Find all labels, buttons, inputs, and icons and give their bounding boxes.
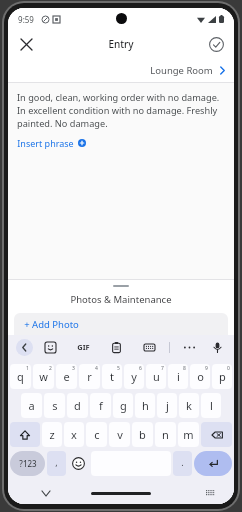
staticText: 1: [26, 365, 29, 372]
button[interactable]: GIF: [75, 340, 92, 354]
button[interactable]: g: [113, 393, 133, 418]
button[interactable]: p: [212, 364, 232, 389]
staticText: 6: [139, 365, 142, 372]
button[interactable]: + Add Photo: [14, 313, 228, 335]
button[interactable]: ,: [47, 451, 66, 476]
button[interactable]: More options: [181, 339, 197, 355]
staticText: k: [186, 398, 192, 413]
staticText: Lounge Room: [150, 64, 213, 77]
button[interactable]: Keyboard settings: [141, 339, 158, 356]
button[interactable]: Backspace: [201, 422, 232, 447]
button[interactable]: s: [44, 393, 65, 418]
button[interactable]: Shift: [10, 422, 40, 447]
staticText: y: [131, 369, 137, 384]
staticText: v: [117, 427, 123, 442]
staticText: 4: [95, 365, 98, 372]
staticText: ?123: [19, 458, 37, 469]
button[interactable]: Done: [204, 32, 228, 56]
staticText: e: [63, 369, 70, 384]
button[interactable]: w: [33, 364, 54, 389]
staticText: c: [94, 427, 100, 442]
button[interactable]: t: [102, 364, 122, 389]
staticText: n: [162, 427, 169, 442]
button[interactable]: l: [201, 393, 221, 418]
staticText: x: [71, 427, 77, 442]
staticText: f: [99, 398, 103, 413]
button[interactable]: m: [178, 422, 199, 447]
staticText: t: [110, 369, 114, 384]
staticText: g: [120, 398, 127, 413]
button[interactable]: Switch keyboard: [202, 485, 218, 501]
button[interactable]: Hide keyboard: [38, 485, 54, 501]
staticText: 2: [49, 365, 52, 372]
staticText: ,: [55, 456, 58, 468]
staticText: b: [139, 427, 146, 442]
staticText: h: [142, 398, 149, 413]
staticText: i: [177, 369, 180, 384]
button[interactable]: i: [168, 364, 188, 389]
button[interactable]: c: [86, 422, 107, 447]
staticText: l: [210, 398, 213, 413]
button[interactable]: Sticker: [42, 339, 59, 356]
button[interactable]: Lounge Room: [8, 58, 234, 82]
button[interactable]: .: [173, 451, 192, 476]
button[interactable]: y: [124, 364, 144, 389]
staticText: 9: [205, 365, 208, 372]
button[interactable]: o: [190, 364, 210, 389]
button[interactable]: x: [64, 422, 84, 447]
staticText: 3: [72, 365, 75, 372]
staticText: a: [28, 398, 35, 413]
staticText: Entry: [108, 37, 134, 51]
button[interactable]: e: [56, 364, 77, 389]
staticText: 0: [227, 365, 230, 372]
staticText: m: [183, 427, 194, 442]
button[interactable]: Voice input: [209, 339, 226, 356]
button[interactable]: h: [135, 393, 155, 418]
button[interactable]: n: [155, 422, 176, 447]
staticText: u: [153, 369, 160, 384]
staticText: r: [87, 369, 92, 384]
button[interactable]: q: [10, 364, 31, 389]
button[interactable]: j: [157, 393, 177, 418]
button[interactable]: Clipboard: [108, 339, 125, 356]
button[interactable]: u: [146, 364, 166, 389]
staticText: d: [74, 398, 81, 413]
staticText: Photos & Maintenance: [70, 293, 172, 306]
staticText: p: [219, 369, 226, 384]
button[interactable]: b: [132, 422, 153, 447]
button[interactable]: Back: [16, 339, 33, 356]
button[interactable]: a: [21, 393, 42, 418]
staticText: w: [39, 369, 48, 384]
button[interactable]: Insert phrase: [17, 137, 86, 149]
button[interactable]: d: [67, 393, 88, 418]
staticText: In good, clean, working order with no da…: [17, 91, 225, 130]
staticText: s: [52, 398, 58, 413]
staticText: z: [49, 427, 55, 442]
button[interactable]: z: [42, 422, 62, 447]
staticText: 5: [117, 365, 120, 372]
button[interactable]: f: [90, 393, 111, 418]
button[interactable]: ?123: [10, 451, 45, 476]
staticText: o: [197, 369, 204, 384]
staticText: .: [181, 456, 184, 468]
staticText: Insert phrase: [17, 137, 74, 149]
button[interactable]: Enter: [194, 451, 232, 476]
staticText: GIF: [77, 342, 90, 352]
button[interactable]: Close: [14, 32, 38, 56]
staticText: + Add Photo: [24, 318, 79, 331]
staticText: 8: [183, 365, 186, 372]
staticText: j: [166, 398, 169, 413]
button[interactable]: k: [179, 393, 199, 418]
button[interactable]: v: [109, 422, 130, 447]
staticText: q: [17, 369, 24, 384]
button[interactable]: r: [79, 364, 100, 389]
staticText: 7: [161, 365, 164, 372]
button[interactable]: Emoji: [68, 451, 89, 476]
staticText: 9:59: [18, 14, 34, 25]
